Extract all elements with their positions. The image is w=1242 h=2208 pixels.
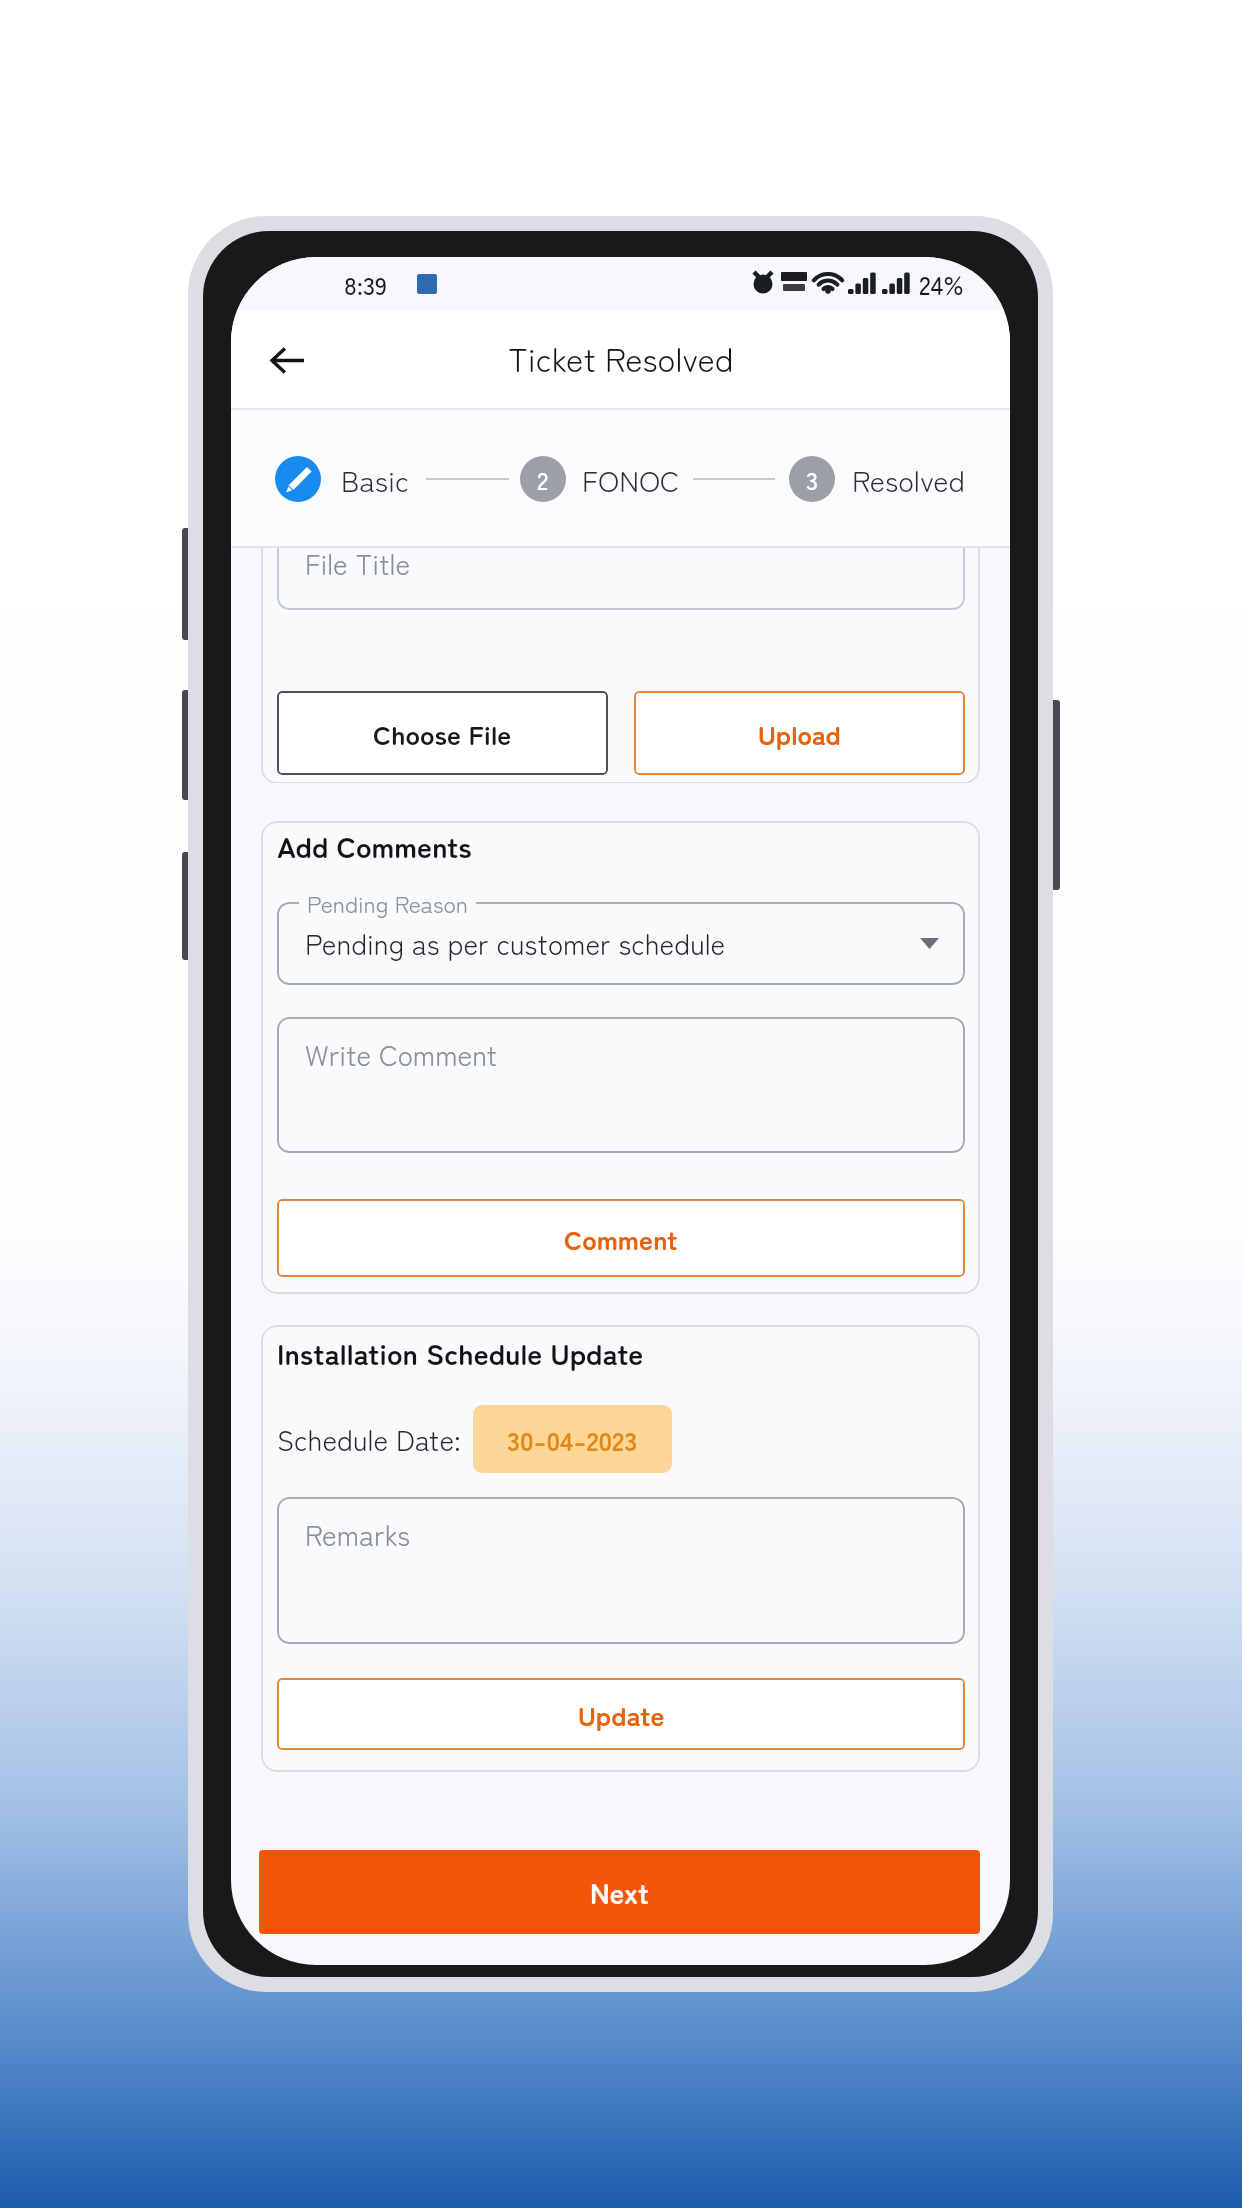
button[interactable]: Update — [277, 1678, 965, 1750]
staticText: Add Comments — [277, 824, 472, 866]
staticText: File Title — [305, 548, 411, 584]
staticText: Remarks — [305, 1514, 410, 1555]
button[interactable]: Next — [259, 1850, 980, 1934]
staticText: Basic — [341, 458, 410, 500]
staticText: Update — [578, 1695, 665, 1734]
staticText: Choose File — [373, 714, 512, 753]
staticText: Comment — [564, 1219, 678, 1258]
button[interactable]: Remarks — [277, 1497, 965, 1644]
button[interactable]: Back — [249, 322, 325, 398]
staticText: Ticket Resolved — [508, 334, 734, 382]
staticText: 3 — [806, 461, 819, 497]
staticText: Pending Reason — [307, 886, 468, 918]
button[interactable]: Upload — [634, 691, 965, 775]
button[interactable]: File Title — [277, 548, 965, 610]
staticText: Write Comment — [305, 1034, 498, 1075]
button[interactable]: 30-04-2023 — [473, 1405, 672, 1473]
button[interactable]: 3 — [789, 456, 835, 502]
staticText: 24% — [919, 265, 964, 303]
staticText: Upload — [758, 714, 841, 753]
staticText: 30-04-2023 — [507, 1420, 638, 1459]
staticText: 8:39 — [344, 266, 388, 302]
button[interactable]: Basic step, completed — [275, 456, 321, 502]
button[interactable]: Choose File — [277, 691, 608, 775]
staticText: Next — [590, 1872, 649, 1913]
button[interactable]: Comment — [277, 1199, 965, 1277]
staticText: Pending as per customer schedule — [305, 923, 726, 964]
staticText: FONOC — [582, 458, 680, 500]
staticText: Schedule Date: — [277, 1419, 461, 1460]
button[interactable]: Write Comment — [277, 1017, 965, 1153]
staticText: 2 — [537, 461, 549, 497]
button[interactable]: Pending as per customer schedule — [277, 902, 965, 985]
staticText: Installation Schedule Update — [277, 1331, 644, 1373]
button[interactable]: 2 — [520, 456, 566, 502]
staticText: Resolved — [852, 458, 965, 500]
